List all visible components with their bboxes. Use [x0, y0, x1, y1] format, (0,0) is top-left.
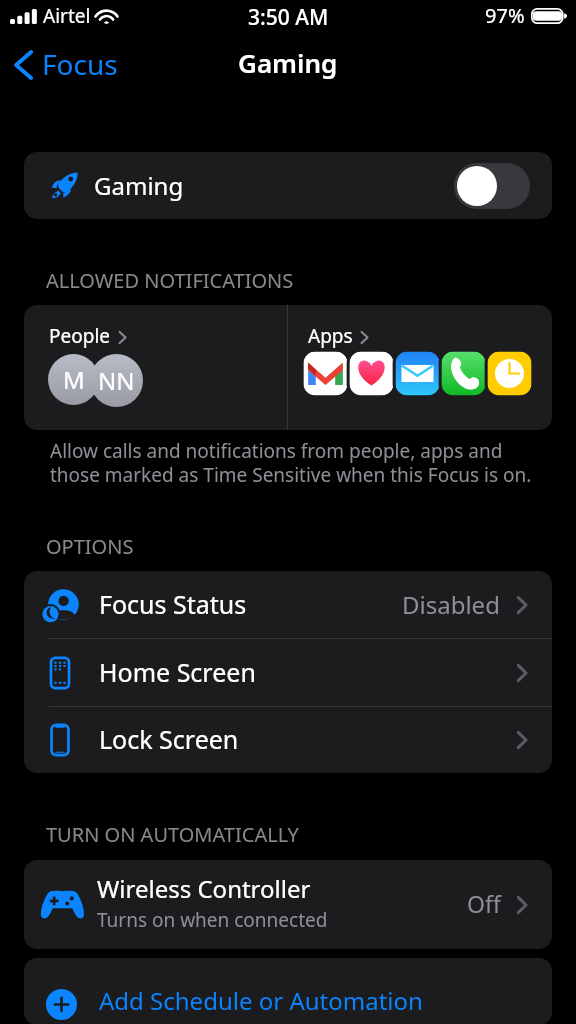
staticText: Focus Status [99, 587, 247, 621]
staticText: NN [98, 364, 135, 397]
staticText: M [63, 363, 85, 396]
staticText: OPTIONS [46, 533, 134, 560]
button[interactable]: Lock Screen [24, 707, 552, 773]
staticText: 3:50 AM [248, 3, 329, 32]
button[interactable]: Add Schedule or Automation [24, 958, 552, 1024]
button[interactable]: Toggle Gaming Focus [454, 163, 530, 209]
button[interactable]: Apps [288, 305, 552, 430]
staticText: Turns on when connected [97, 907, 328, 933]
staticText: ALLOWED NOTIFICATIONS [46, 267, 294, 294]
staticText: Off [467, 888, 501, 919]
staticText: Focus [42, 45, 118, 83]
staticText: Add Schedule or Automation [99, 984, 423, 1017]
button[interactable]: Back to Focus [10, 43, 122, 87]
staticText: Gaming [238, 45, 338, 80]
staticText: 97% [485, 2, 525, 29]
staticText: Wireless Controller [97, 872, 311, 905]
button[interactable]: Wireless Controller [24, 860, 552, 949]
button[interactable]: Focus Status [24, 571, 552, 638]
staticText: Apps [308, 323, 353, 349]
staticText: Gaming [94, 169, 184, 202]
staticText: People [49, 323, 111, 349]
staticText: TURN ON AUTOMATICALLY [46, 821, 299, 848]
staticText: Home Screen [99, 655, 256, 689]
staticText: Airtel [43, 3, 91, 29]
button[interactable]: People [24, 305, 287, 430]
staticText: Allow calls and notifications from peopl… [50, 438, 540, 487]
staticText: Lock Screen [99, 722, 239, 756]
staticText: Disabled [402, 588, 500, 621]
button[interactable]: Home Screen [24, 639, 552, 706]
button[interactable]: Gaming [24, 152, 552, 219]
